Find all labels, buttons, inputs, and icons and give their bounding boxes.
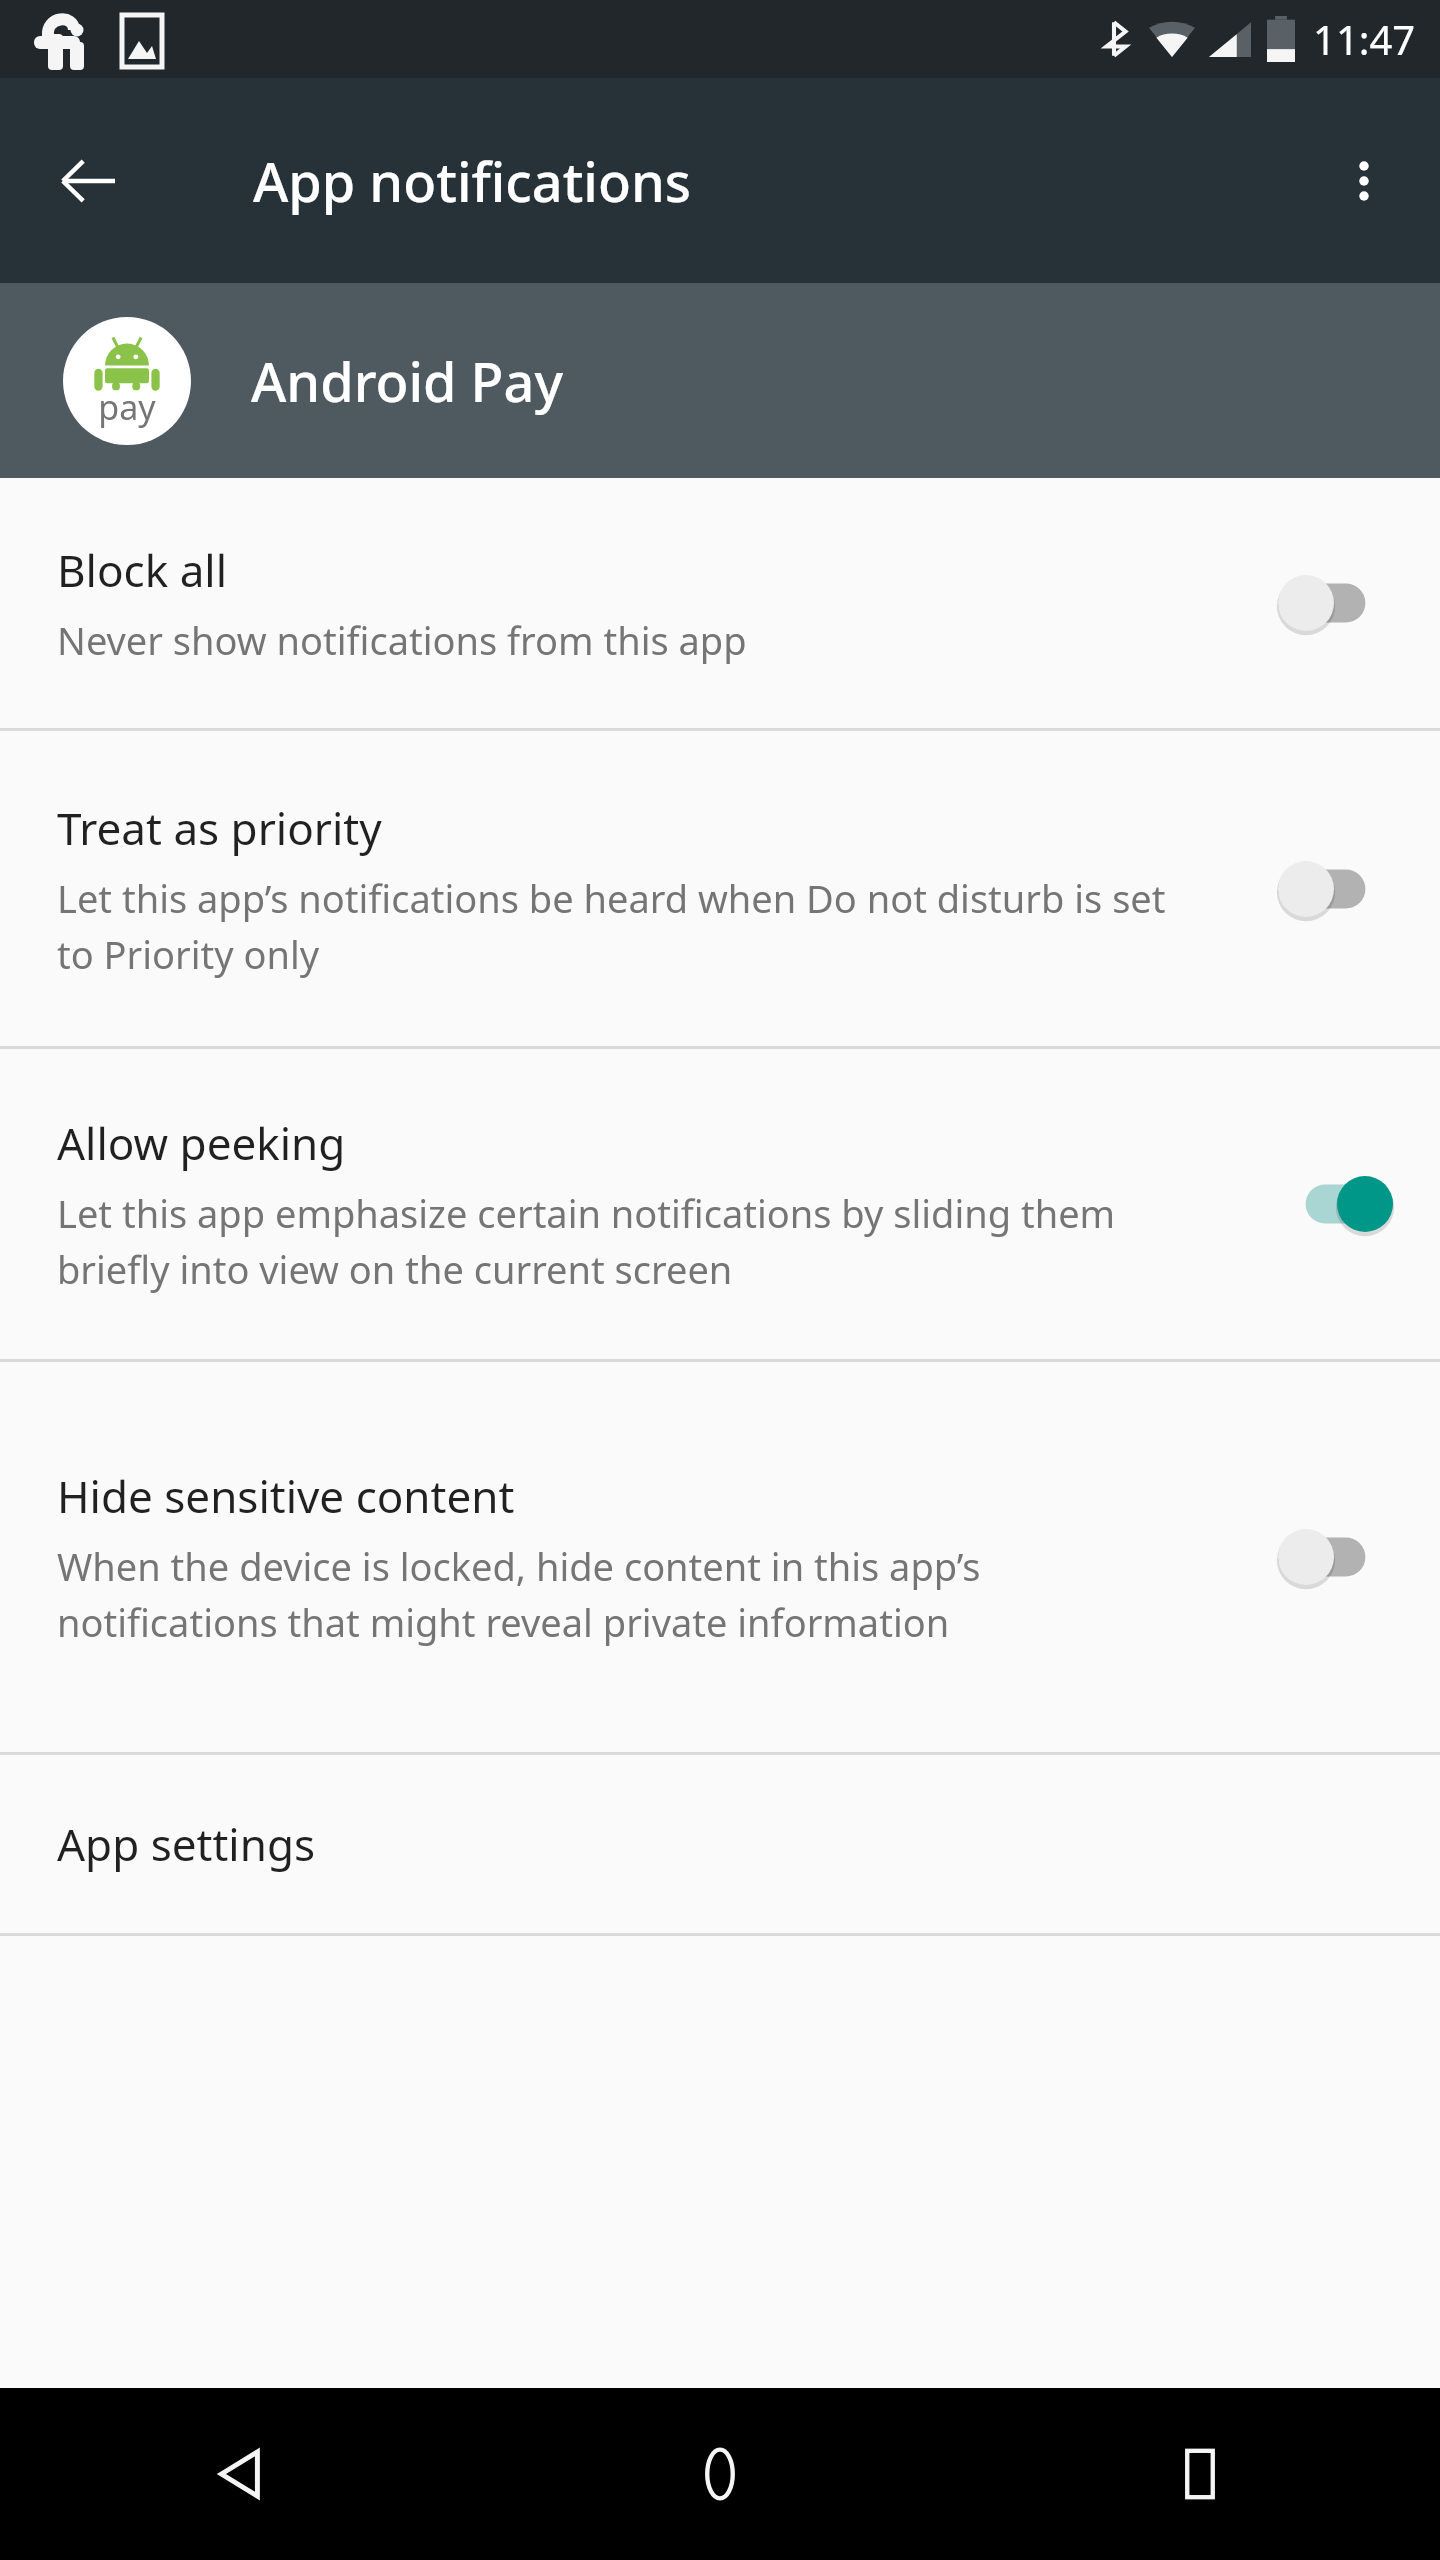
- button[interactable]: Recent apps: [960, 2388, 1440, 2560]
- button[interactable]: More options: [1316, 133, 1412, 229]
- button[interactable]: Home: [480, 2388, 960, 2560]
- button[interactable]: Treat as priority: [0, 731, 1440, 1046]
- staticText: Allow peeking: [57, 1113, 346, 1173]
- staticText: Let this app emphasize certain notificat…: [57, 1187, 1206, 1295]
- button[interactable]: Back: [40, 133, 136, 229]
- staticText: App settings: [57, 1814, 316, 1874]
- staticText: Android Pay: [251, 344, 563, 418]
- button[interactable]: Treat as priority: [1230, 731, 1440, 1046]
- staticText: 11:47: [1313, 12, 1416, 66]
- button[interactable]: Allow peeking: [0, 1049, 1440, 1359]
- button[interactable]: Allow peeking: [1230, 1049, 1440, 1359]
- button[interactable]: Block all: [1230, 478, 1440, 728]
- button[interactable]: Hide sensitive content: [1230, 1362, 1440, 1752]
- button[interactable]: Hide sensitive content: [0, 1362, 1440, 1752]
- staticText: Hide sensitive content: [57, 1466, 515, 1526]
- staticText: Never show notifications from this app: [57, 614, 747, 666]
- button[interactable]: pay: [0, 283, 1440, 478]
- staticText: When the device is locked, hide content …: [57, 1540, 1206, 1648]
- button[interactable]: App settings: [0, 1755, 1440, 1933]
- staticText: App notifications: [253, 144, 692, 218]
- button[interactable]: Block all: [0, 478, 1440, 728]
- button[interactable]: Back: [0, 2388, 480, 2560]
- staticText: Treat as priority: [57, 798, 382, 858]
- staticText: pay: [98, 384, 156, 430]
- staticText: Block all: [57, 540, 228, 600]
- staticText: Let this app’s notifications be heard wh…: [57, 872, 1206, 980]
